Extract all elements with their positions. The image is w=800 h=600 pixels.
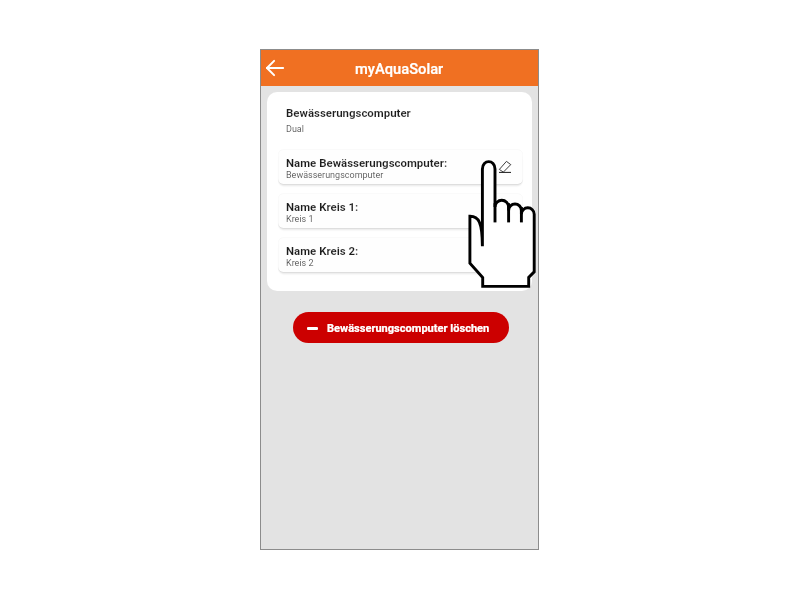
- button[interactable]: Edit: [499, 161, 511, 173]
- button[interactable]: Name Kreis 2:: [278, 237, 523, 277]
- button[interactable]: Name Bewässerungscomputer:: [278, 149, 523, 189]
- staticText: Dual: [286, 124, 304, 135]
- other: Tap pointer: [464, 156, 544, 296]
- button[interactable]: Name Kreis 1:: [278, 193, 523, 233]
- staticText: Bewässerungscomputer: [286, 106, 411, 119]
- staticText: Name Kreis 1:: [286, 200, 359, 213]
- button[interactable]: Back: [263, 54, 291, 82]
- staticText: Name Kreis 2:: [286, 244, 359, 257]
- staticText: Name Bewässerungscomputer:: [286, 156, 448, 169]
- button[interactable]: Edit: [499, 205, 511, 217]
- staticText: Kreis 1: [286, 214, 314, 225]
- button[interactable]: Bewässerungscomputer löschen: [293, 312, 509, 343]
- staticText: Bewässerungscomputer löschen: [327, 322, 490, 335]
- staticText: myAquaSolar: [355, 60, 444, 77]
- staticText: Bewässerungscomputer: [286, 170, 384, 181]
- staticText: Kreis 2: [286, 258, 314, 269]
